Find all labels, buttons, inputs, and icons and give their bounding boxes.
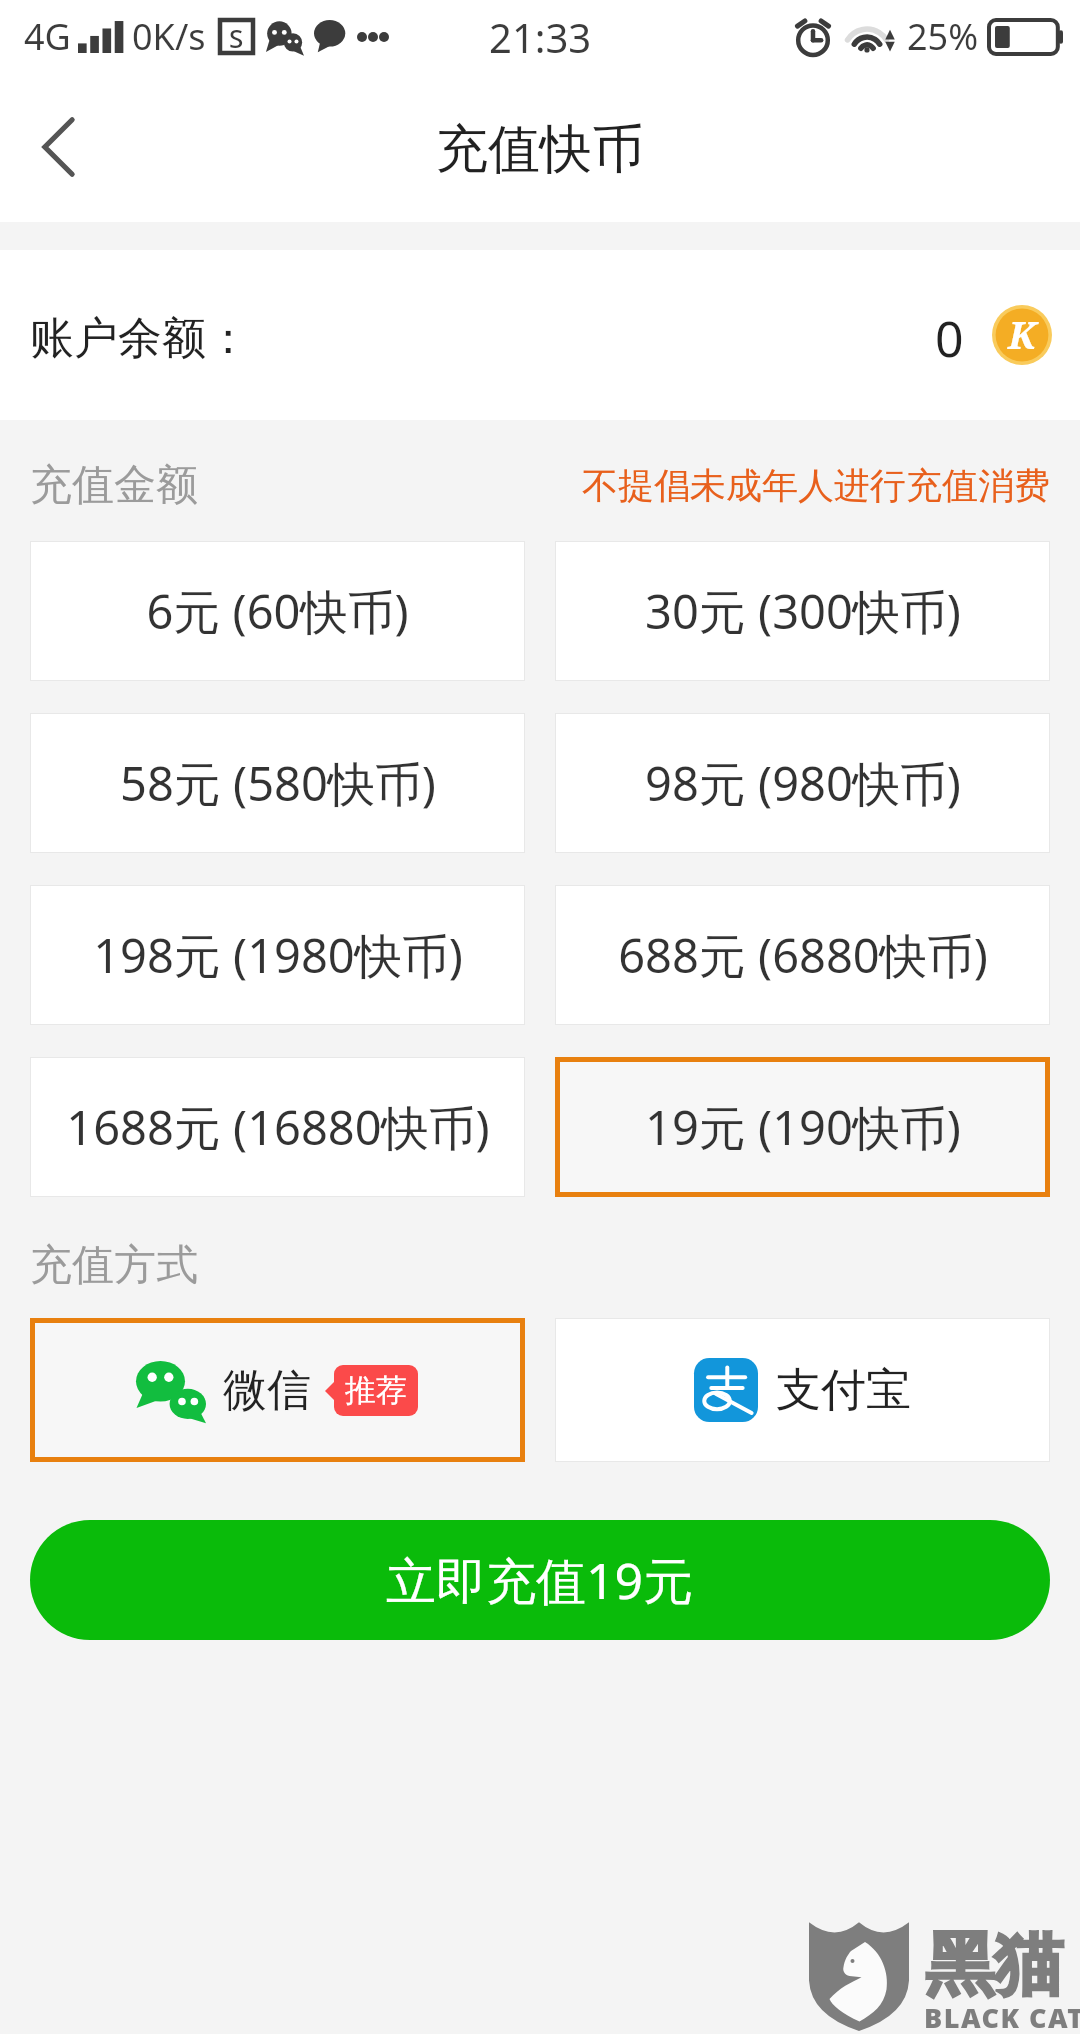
button[interactable]: 30元 (300快币) [555,541,1050,681]
button[interactable]: 98元 (980快币) [555,713,1050,853]
staticText: 4G [24,12,71,61]
staticText: 30元 (300快币) [645,579,961,643]
staticText: 6元 (60快币) [146,579,409,643]
button[interactable]: 立即充值19元 [30,1520,1050,1640]
staticText: 688元 (6880快币) [618,923,988,987]
staticText: 0K/s [132,12,206,61]
staticText: 19元 (190快币) [645,1095,961,1159]
staticText: 58元 (580快币) [120,751,436,815]
staticText: 支付宝 [776,1362,911,1419]
staticText: 98元 (980快币) [645,751,961,815]
staticText: 198元 (1980快币) [93,923,463,987]
button[interactable]: 6元 (60快币) [30,541,525,681]
button[interactable]: 688元 (6880快币) [555,885,1050,1025]
staticText: 推荐 [345,1371,407,1410]
staticText: 25% [907,12,979,61]
staticText: 充值金额 [30,459,198,512]
button[interactable]: 198元 (1980快币) [30,885,525,1025]
staticText: 充值快币 [436,117,644,183]
button[interactable]: 1688元 (16880快币) [30,1057,525,1197]
staticText: S [229,20,244,53]
staticText: K [1008,308,1037,360]
button[interactable]: Back [1,87,116,207]
button[interactable]: 19元 (190快币) [555,1057,1050,1197]
staticText: 0 [935,304,964,372]
button[interactable]: 支付宝 [555,1318,1050,1462]
staticText: 21:33 [489,10,592,64]
staticText: 黑猫 [925,1922,1063,2009]
staticText: 不提倡未成年人进行充值消费 [582,463,1050,508]
staticText: 微信 [223,1363,311,1418]
staticText: 充值方式 [30,1239,198,1292]
button[interactable]: 微信 [30,1318,525,1462]
button[interactable]: 账户余额： [0,250,1080,420]
staticText: 立即充值19元 [386,1546,694,1614]
staticText: 账户余额： [30,311,250,366]
staticText: 1688元 (16880快币) [66,1095,490,1159]
button[interactable]: 58元 (580快币) [30,713,525,853]
staticText: BLACK CAT [924,1999,1080,2034]
